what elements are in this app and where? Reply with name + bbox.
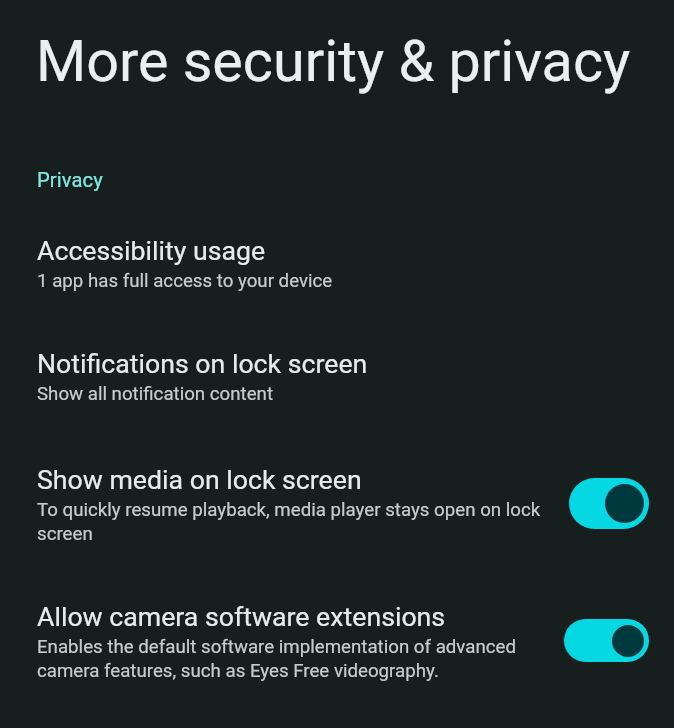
staticText: To quickly resume playback, media player… (37, 497, 549, 545)
staticText: Allow camera software extensions (37, 601, 446, 632)
button[interactable]: Show media on lock screen (569, 478, 649, 529)
staticText: 1 app has full access to your device (37, 268, 333, 292)
staticText: Notifications on lock screen (37, 348, 368, 379)
button[interactable]: Show media on lock screen (0, 464, 674, 545)
staticText: Privacy (37, 168, 103, 192)
staticText: Accessibility usage (37, 235, 266, 266)
staticText: Enables the default software implementat… (37, 634, 537, 682)
staticText: More security & privacy (36, 28, 631, 95)
button[interactable]: Allow camera software extensions (0, 601, 674, 682)
button[interactable]: Allow camera software extensions (564, 619, 649, 662)
button[interactable]: Notifications on lock screen (0, 348, 674, 405)
button[interactable]: Accessibility usage (0, 235, 674, 292)
staticText: Show all notification content (37, 381, 274, 405)
staticText: Show media on lock screen (37, 464, 362, 495)
